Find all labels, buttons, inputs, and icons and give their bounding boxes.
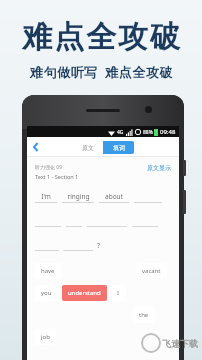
button[interactable]: 原文 xyxy=(72,141,103,154)
staticText: I xyxy=(117,289,120,297)
staticText: you xyxy=(41,289,52,297)
button[interactable]: I xyxy=(111,285,126,301)
button[interactable]: job xyxy=(35,329,56,345)
staticText: 原文 xyxy=(82,144,94,152)
staticText: have xyxy=(41,267,55,275)
staticText: ringing xyxy=(67,192,90,201)
staticText: job xyxy=(41,333,50,341)
button[interactable]: have xyxy=(35,263,61,279)
button[interactable]: 原文显示 xyxy=(147,164,171,172)
staticText: Text 1 - Section 1 xyxy=(35,173,79,180)
button[interactable]: you xyxy=(35,285,58,301)
button[interactable]: understand xyxy=(62,285,107,301)
staticText: ? xyxy=(97,241,101,251)
button[interactable]: 填词 xyxy=(103,141,134,154)
staticText: vacant xyxy=(142,267,161,275)
staticText: 难句做听写 难点全攻破 xyxy=(30,63,173,81)
button[interactable]: vacant xyxy=(136,263,167,279)
staticText: understand xyxy=(68,289,101,297)
button[interactable]: the xyxy=(133,307,155,323)
staticText: 09:48 xyxy=(160,128,176,136)
button[interactable]: Back xyxy=(27,138,45,156)
staticText: I'm xyxy=(41,192,51,201)
staticText: 填词 xyxy=(113,144,125,152)
staticText: 原文显示 xyxy=(147,164,171,172)
staticText: 88% xyxy=(143,129,153,136)
staticText: 难点全攻破 xyxy=(21,18,181,56)
staticText: 4G xyxy=(117,129,124,136)
staticText: 听力强化 09 xyxy=(35,164,63,171)
staticText: about xyxy=(105,192,123,201)
staticText: 飞速下载 xyxy=(162,338,198,349)
staticText: the xyxy=(139,311,149,319)
